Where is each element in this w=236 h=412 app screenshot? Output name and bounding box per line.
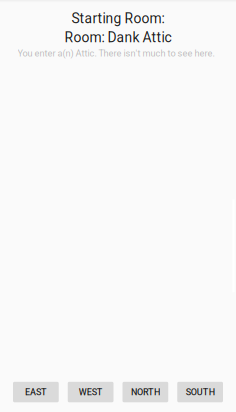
staticText: EAST — [25, 387, 47, 397]
staticText: NORTH — [131, 387, 160, 397]
button[interactable]: SOUTH — [177, 382, 223, 402]
staticText: Room: Dank Attic — [64, 29, 171, 46]
button[interactable]: EAST — [13, 382, 59, 402]
staticText: SOUTH — [186, 387, 215, 397]
button[interactable]: WEST — [68, 382, 114, 402]
staticText: WEST — [79, 387, 103, 397]
button[interactable]: NORTH — [122, 382, 168, 402]
staticText: You enter a(n) Attic. There isn't much t… — [17, 48, 218, 59]
staticText: Starting Room: — [71, 10, 164, 27]
